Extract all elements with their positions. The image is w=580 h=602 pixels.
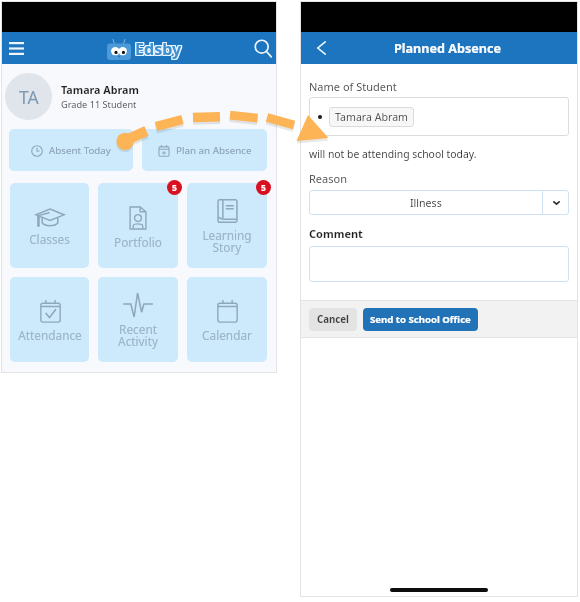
button[interactable]: Learning Story xyxy=(187,183,267,268)
button[interactable]: Cancel xyxy=(309,308,357,331)
staticText: Grade 11 Student xyxy=(61,98,137,111)
button[interactable]: Plan an Absence xyxy=(142,129,267,171)
button[interactable]: Calendar xyxy=(187,277,267,362)
staticText: Cancel xyxy=(317,313,349,326)
staticText: Illness xyxy=(410,196,442,210)
staticText: 5 xyxy=(261,182,266,194)
staticText: Plan an Absence xyxy=(176,144,252,157)
button[interactable]: Search xyxy=(247,32,277,64)
staticText: Edsby xyxy=(134,39,181,61)
staticText: Name of Student xyxy=(309,79,397,94)
staticText: Edsby xyxy=(134,37,181,59)
staticText: Reason xyxy=(309,171,347,186)
button[interactable]: Attendance xyxy=(10,277,89,362)
button[interactable]: Recent Activity xyxy=(98,277,178,362)
staticText: will not be attending school today. xyxy=(309,147,477,161)
button[interactable] xyxy=(309,246,569,282)
staticText: Recent Activity xyxy=(118,321,158,350)
staticText: TA xyxy=(19,85,39,109)
staticText: 5 xyxy=(172,182,177,194)
button[interactable]: Illness xyxy=(309,190,569,215)
button[interactable]: Portfolio xyxy=(98,183,178,268)
button[interactable]: Back xyxy=(306,32,336,64)
staticText: Classes xyxy=(29,231,70,247)
staticText: Edsby xyxy=(134,38,181,60)
staticText: Edsby xyxy=(135,38,182,60)
staticText: Learning Story xyxy=(202,227,252,256)
staticText: Edsby xyxy=(135,37,182,59)
button[interactable]: Absent Today xyxy=(9,129,133,171)
staticText: Planned Absence xyxy=(394,40,501,57)
staticText: Edsby xyxy=(135,39,182,61)
button[interactable]: Menu xyxy=(1,32,31,64)
staticText: Calendar xyxy=(202,327,252,343)
button[interactable]: Send to School Office xyxy=(363,308,478,331)
staticText: Portfolio xyxy=(114,234,162,250)
staticText: Tamara Abram xyxy=(335,110,408,124)
staticText: Absent Today xyxy=(49,144,111,157)
staticText: Tamara Abram xyxy=(61,83,139,98)
button[interactable]: Classes xyxy=(10,183,89,268)
staticText: Send to School Office xyxy=(370,313,471,326)
staticText: Edsby xyxy=(136,39,183,61)
staticText: Edsby xyxy=(136,38,183,60)
staticText: Comment xyxy=(309,226,363,241)
button[interactable]: Tamara Abram xyxy=(309,97,569,136)
staticText: Edsby xyxy=(136,37,183,59)
staticText: Attendance xyxy=(18,327,82,343)
